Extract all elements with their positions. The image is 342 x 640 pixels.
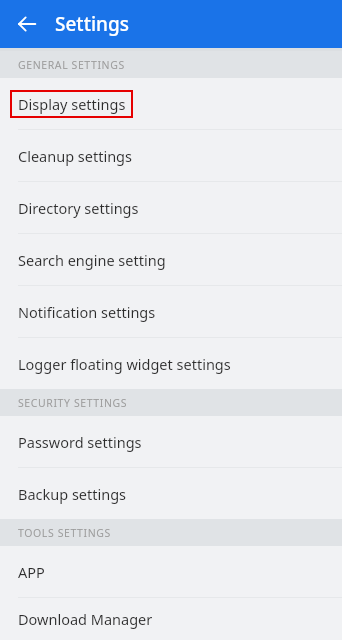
staticText: Backup settings <box>18 484 127 504</box>
button[interactable]: Logger floating widget settings <box>0 338 342 389</box>
staticText: Download Manager <box>18 609 153 629</box>
staticText: Settings <box>55 11 129 37</box>
button[interactable]: Cleanup settings <box>0 130 342 181</box>
staticText: TOOLS SETTINGS <box>18 526 111 540</box>
button[interactable]: Password settings <box>0 416 342 467</box>
button[interactable]: Back <box>8 5 46 43</box>
button[interactable]: APP <box>0 546 342 597</box>
button[interactable]: Directory settings <box>0 182 342 233</box>
button[interactable]: Search engine setting <box>0 234 342 285</box>
staticText: Logger floating widget settings <box>18 354 231 374</box>
staticText: SECURITY SETTINGS <box>18 396 128 410</box>
button[interactable]: Backup settings <box>0 468 342 519</box>
button[interactable]: Notification settings <box>0 286 342 337</box>
staticText: Cleanup settings <box>18 146 132 166</box>
staticText: GENERAL SETTINGS <box>18 58 125 72</box>
staticText: Password settings <box>18 432 142 452</box>
staticText: Search engine setting <box>18 250 166 270</box>
button[interactable]: Download Manager <box>0 598 342 640</box>
staticText: Display settings <box>18 94 126 114</box>
staticText: Notification settings <box>18 302 156 322</box>
button[interactable]: Display settings <box>0 78 342 129</box>
staticText: APP <box>18 562 45 582</box>
staticText: Directory settings <box>18 198 139 218</box>
